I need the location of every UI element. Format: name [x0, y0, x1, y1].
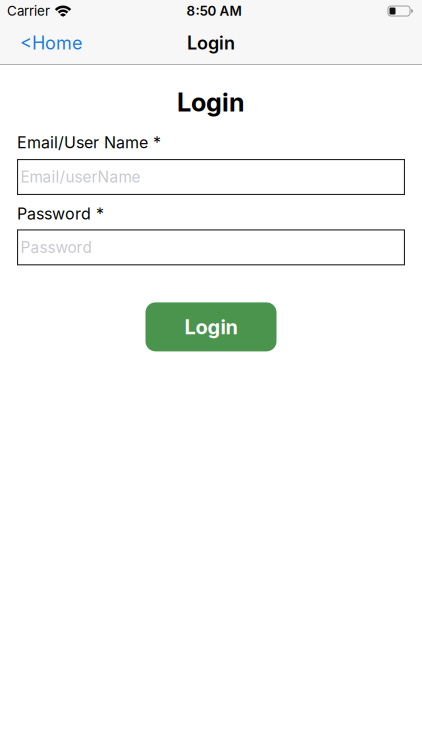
staticText: Password *: [17, 204, 104, 223]
staticText: Carrier: [7, 3, 50, 19]
staticText: Login: [184, 315, 237, 339]
staticText: Login: [187, 32, 235, 54]
staticText: Email/userName: [20, 168, 140, 186]
staticText: Email/User Name *: [17, 133, 161, 152]
staticText: Login: [177, 87, 245, 118]
button[interactable]: Password: [17, 229, 405, 265]
staticText: <Home: [20, 32, 82, 54]
staticText: Password: [20, 238, 91, 257]
button[interactable]: <Home: [20, 32, 82, 54]
button[interactable]: Login: [145, 302, 276, 351]
staticText: 8:50 AM: [186, 3, 241, 19]
button[interactable]: Email/userName: [17, 159, 405, 195]
